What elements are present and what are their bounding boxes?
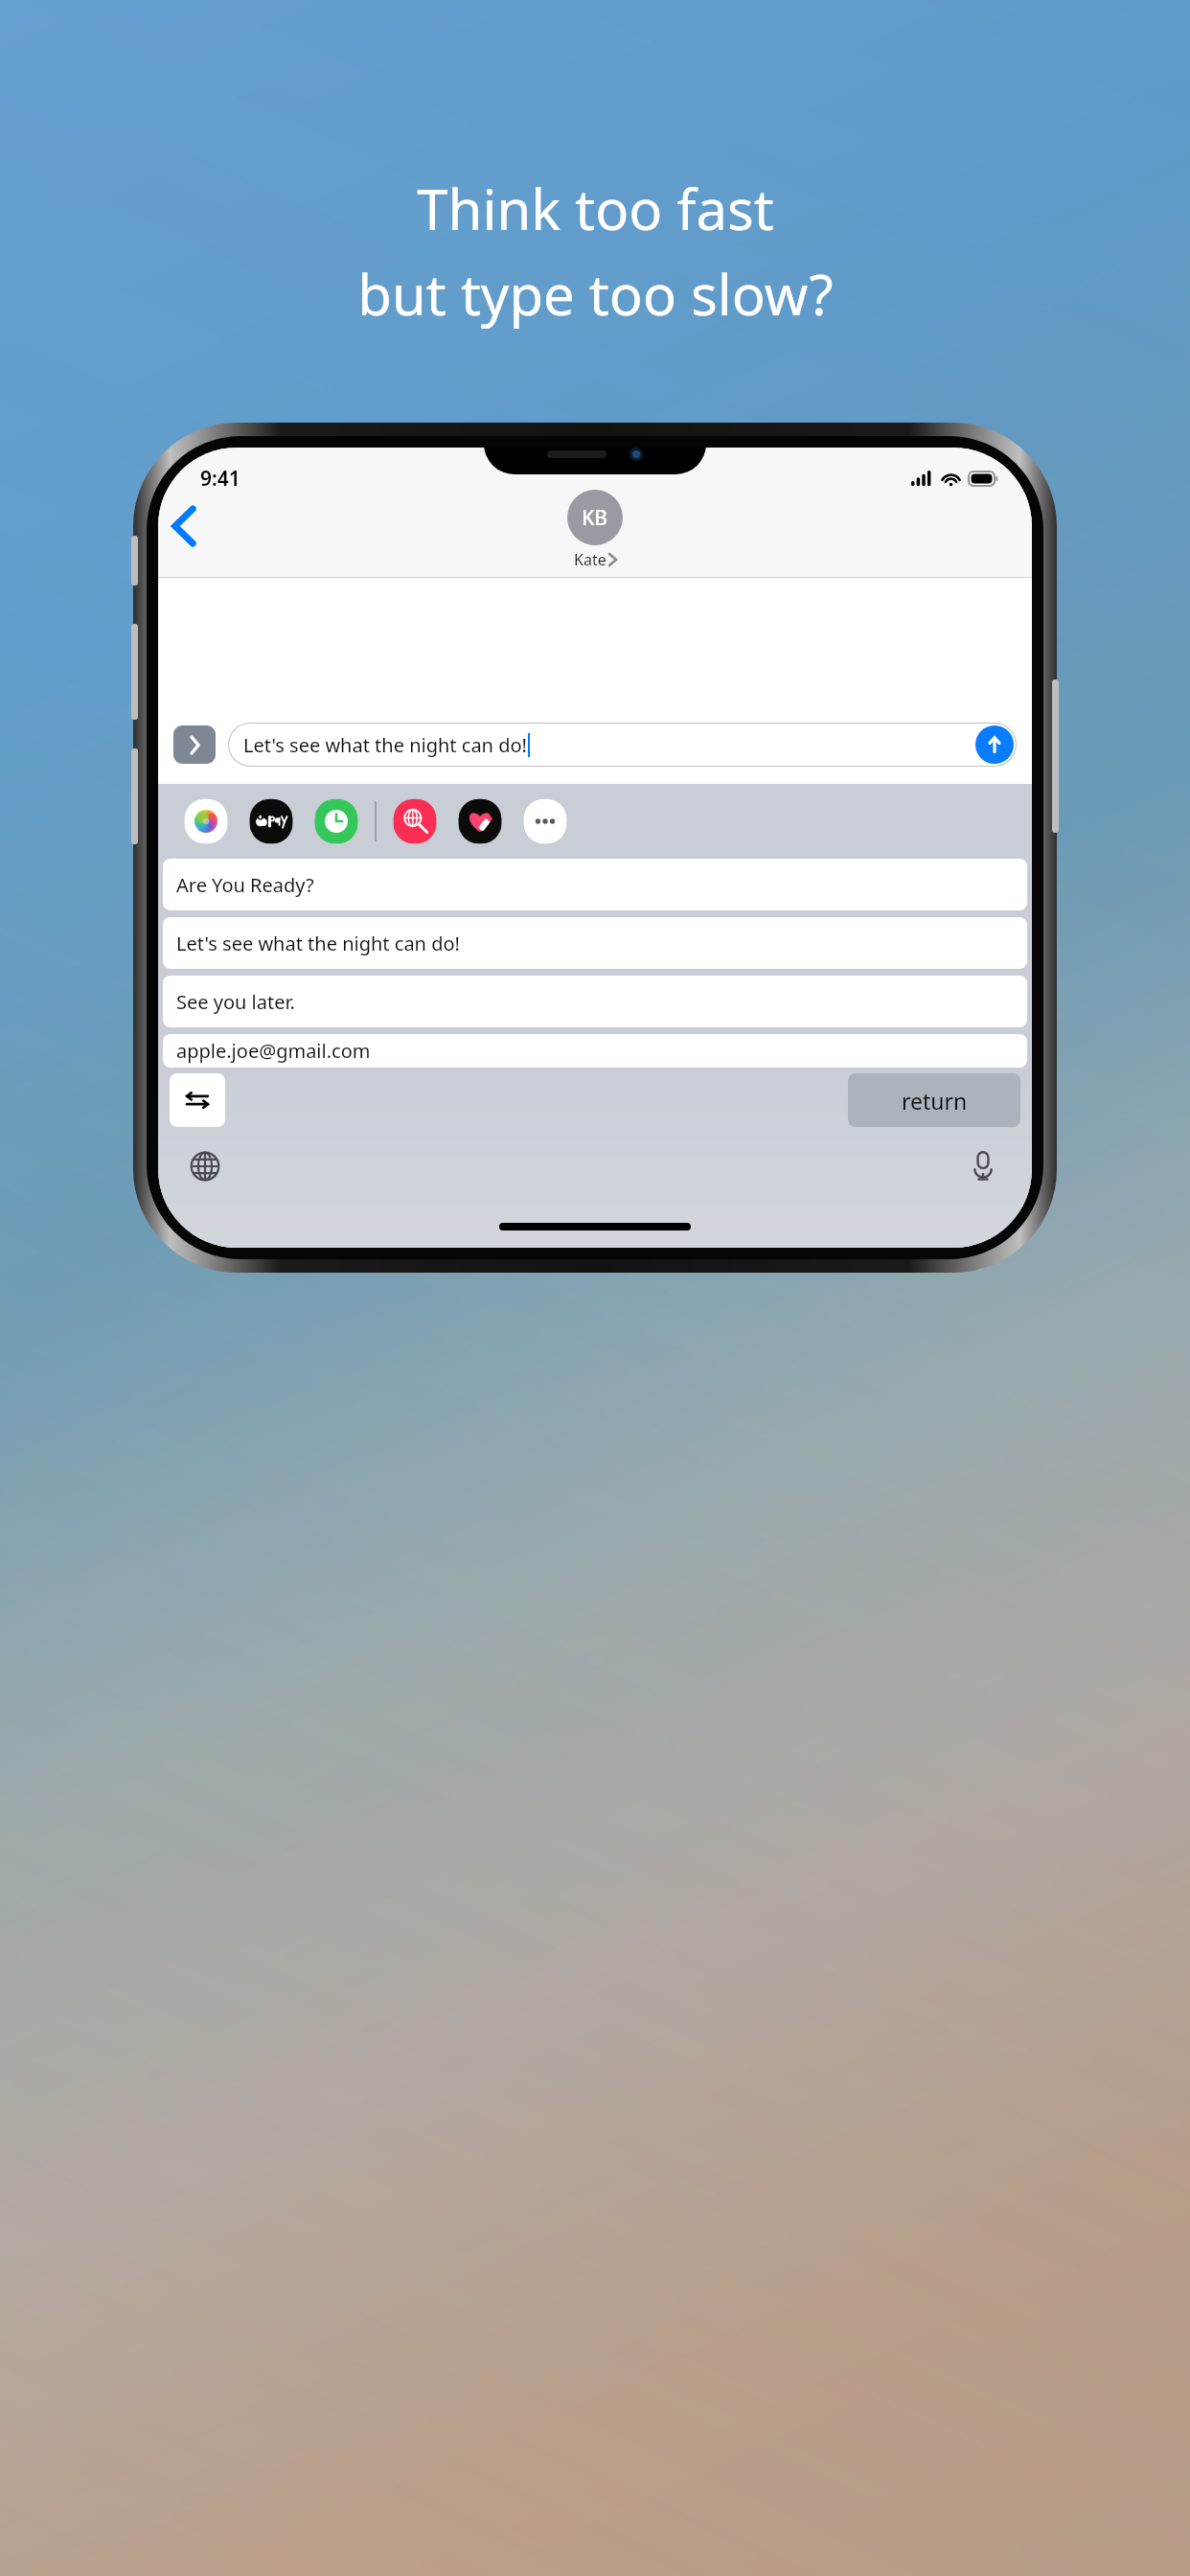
button[interactable]: Send [975, 725, 1014, 764]
button[interactable]: KB [567, 490, 623, 570]
button[interactable]: apple.joe@gmail.com [163, 1034, 1027, 1068]
staticText: but type too slow? [357, 256, 834, 332]
button[interactable]: Let's see what the night can do! [228, 723, 1017, 767]
staticText: See you later. [176, 989, 295, 1015]
button[interactable]: Expand apps [173, 725, 216, 764]
staticText: Let's see what the night can do! [243, 732, 527, 758]
button[interactable]: Photos [179, 793, 233, 849]
button[interactable]: Let's see what the night can do! [163, 917, 1027, 969]
staticText: Are You Ready? [176, 872, 314, 898]
button[interactable]: Back [158, 500, 210, 552]
button[interactable]: Clock [309, 793, 363, 849]
button[interactable]: Are You Ready? [163, 859, 1027, 910]
button[interactable]: Switch input [170, 1073, 225, 1127]
staticText: Let's see what the night can do! [176, 931, 460, 956]
button[interactable]: Change language [179, 1140, 231, 1192]
staticText: 9:41 [200, 465, 240, 493]
staticText: KB [582, 504, 608, 532]
staticText: Kate [574, 549, 606, 570]
staticText: apple.joe@gmail.com [176, 1038, 371, 1064]
button[interactable]: More [518, 793, 572, 849]
button[interactable]: return [848, 1073, 1020, 1127]
staticText: Think too fast [417, 171, 774, 246]
button[interactable]: Stickers [453, 793, 507, 849]
button[interactable]: Image search [388, 793, 442, 849]
button[interactable]: Dictate [957, 1140, 1009, 1192]
button[interactable]: See you later. [163, 976, 1027, 1027]
staticText: return [902, 1086, 968, 1115]
button[interactable]: Apple Pay [244, 793, 298, 849]
